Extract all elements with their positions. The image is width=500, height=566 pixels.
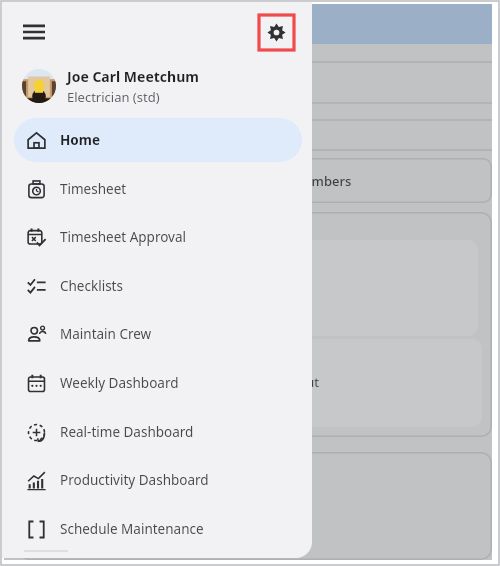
button[interactable]: Weekly Dashboard bbox=[2, 361, 312, 405]
button[interactable]: Timesheet Approval bbox=[2, 215, 312, 259]
button[interactable]: Schedule Maintenance bbox=[2, 507, 312, 551]
button[interactable]: Joe Carl Meetchum bbox=[2, 64, 312, 108]
staticText: Schedule Maintenance bbox=[60, 520, 204, 538]
staticText: Maintain Crew bbox=[60, 325, 152, 343]
staticText: Productivity Dashboard bbox=[60, 471, 209, 489]
staticText: Home bbox=[60, 131, 100, 149]
staticText: Electrician (std) bbox=[67, 88, 160, 106]
button[interactable]: Timesheet bbox=[2, 167, 312, 211]
button[interactable]: Checklists bbox=[2, 264, 312, 308]
staticText: = bbox=[90, 278, 99, 298]
staticText: Weekly Dashboard bbox=[60, 374, 179, 392]
button[interactable]: Settings bbox=[259, 15, 294, 50]
staticText: Checklists bbox=[60, 277, 123, 295]
staticText: Joe Carl Meetchum bbox=[67, 67, 199, 86]
button[interactable]: Productivity Dashboard bbox=[2, 458, 312, 502]
staticText: and bbox=[44, 279, 68, 297]
button[interactable]: Maintain Crew bbox=[2, 312, 312, 356]
staticText: Timesheet Approval bbox=[60, 228, 186, 246]
staticText: Real-time Dashboard bbox=[60, 423, 194, 441]
button[interactable]: Home bbox=[14, 118, 302, 162]
staticText: Total Crew Members bbox=[224, 172, 352, 190]
button[interactable]: Open menu bbox=[18, 16, 50, 48]
staticText: Timesheet bbox=[60, 180, 127, 198]
button[interactable]: Real-time Dashboard bbox=[2, 410, 312, 454]
staticText: Clock Out bbox=[260, 373, 319, 391]
